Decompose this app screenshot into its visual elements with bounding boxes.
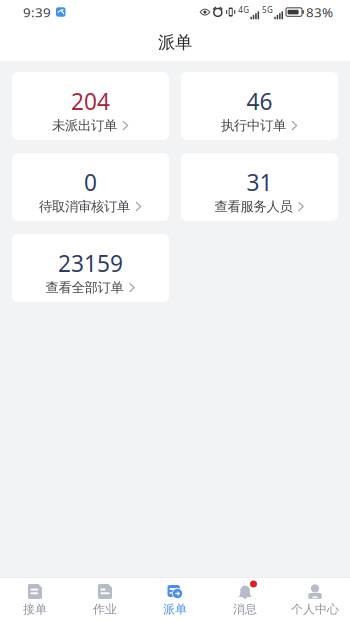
button[interactable]: 派单 — [140, 577, 210, 622]
button[interactable]: 0 — [12, 153, 169, 221]
staticText: 5G — [262, 5, 273, 15]
button[interactable]: 46 — [181, 72, 338, 140]
staticText: 46 — [246, 86, 272, 116]
button[interactable]: 23159 — [12, 234, 169, 302]
staticText: 派单 — [163, 602, 187, 617]
button[interactable]: 个人中心 — [280, 577, 350, 622]
staticText: 31 — [246, 167, 272, 197]
staticText: 作业 — [93, 602, 117, 617]
staticText: 消息 — [233, 602, 257, 617]
staticText: 个人中心 — [291, 602, 339, 617]
button[interactable]: 作业 — [70, 577, 140, 622]
staticText: 接单 — [23, 602, 47, 617]
staticText: 4G — [238, 5, 249, 15]
staticText: 83% — [306, 3, 333, 21]
staticText: 204 — [71, 86, 110, 116]
staticText: 派单 — [158, 32, 192, 53]
staticText: 执行中订单 — [221, 117, 286, 134]
staticText: 未派出订单 — [52, 117, 117, 134]
staticText: 0 — [84, 167, 97, 197]
staticText: 待取消审核订单 — [39, 198, 130, 215]
button[interactable]: 204 — [12, 72, 169, 140]
staticText: 23159 — [58, 248, 123, 278]
button[interactable]: 31 — [181, 153, 338, 221]
staticText: 查看服务人员 — [214, 198, 292, 215]
staticText: 查看全部订单 — [45, 279, 123, 296]
button[interactable]: 消息 — [210, 577, 280, 622]
button[interactable]: 接单 — [0, 577, 70, 622]
staticText: 9:39 — [23, 3, 51, 21]
